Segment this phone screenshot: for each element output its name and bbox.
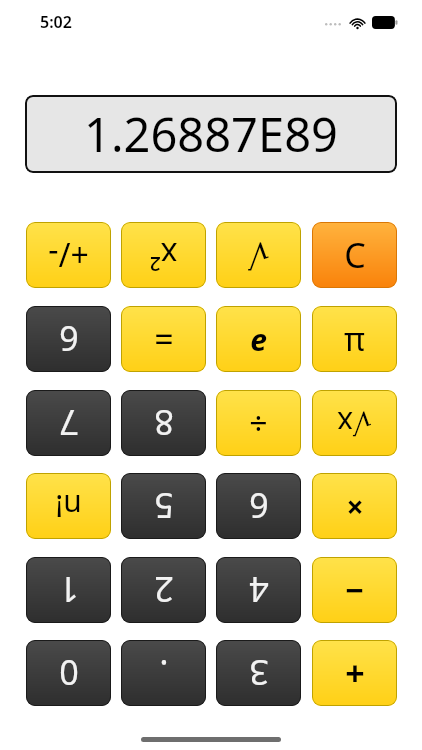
staticText: n!	[55, 486, 82, 527]
button[interactable]: 5	[121, 473, 206, 539]
staticText: ×	[346, 486, 364, 527]
staticText: √x	[337, 403, 372, 444]
staticText: C	[344, 232, 366, 278]
button[interactable]: 6	[216, 473, 301, 539]
button[interactable]: +/-	[26, 222, 111, 288]
button[interactable]: 1	[26, 557, 111, 623]
staticText: 1	[59, 567, 79, 613]
button[interactable]: √	[216, 222, 301, 288]
staticText: π	[344, 317, 365, 361]
staticText: .	[159, 650, 169, 696]
staticText: √	[248, 235, 270, 275]
staticText: 5:02	[40, 11, 72, 33]
staticText: 4	[249, 567, 269, 613]
button[interactable]: n!	[26, 473, 111, 539]
button[interactable]: +	[312, 640, 397, 706]
staticText: 7	[59, 400, 79, 446]
button[interactable]: ×	[312, 473, 397, 539]
staticText: 3	[249, 650, 269, 696]
staticText: −	[345, 568, 364, 612]
staticText: e	[250, 319, 267, 360]
button[interactable]: =	[121, 306, 206, 372]
button[interactable]: .	[121, 640, 206, 706]
staticText: ÷	[249, 401, 268, 445]
button[interactable]: √x	[312, 390, 397, 456]
staticText: x²	[149, 233, 178, 277]
button[interactable]: π	[312, 306, 397, 372]
staticText: 6	[249, 483, 269, 529]
button[interactable]: 4	[216, 557, 301, 623]
staticText: 1.26887E89	[84, 102, 338, 166]
button[interactable]: 8	[121, 390, 206, 456]
button[interactable]: C	[312, 222, 397, 288]
staticText: =	[154, 316, 174, 362]
button[interactable]: 2	[121, 557, 206, 623]
staticText: 5	[154, 483, 174, 529]
staticText: 2	[154, 567, 174, 613]
button[interactable]: e	[216, 306, 301, 372]
button[interactable]: 0	[26, 640, 111, 706]
button[interactable]: 1.26887E89	[25, 95, 397, 173]
button[interactable]: ÷	[216, 390, 301, 456]
staticText: 6	[59, 316, 79, 362]
button[interactable]: x²	[121, 222, 206, 288]
button[interactable]: 7	[26, 390, 111, 456]
staticText: 0	[59, 650, 79, 696]
staticText: +/-	[48, 233, 89, 277]
button[interactable]: 3	[216, 640, 301, 706]
staticText: +	[345, 650, 365, 696]
button[interactable]: −	[312, 557, 397, 623]
button[interactable]: 6	[26, 306, 111, 372]
staticText: 8	[154, 400, 174, 446]
